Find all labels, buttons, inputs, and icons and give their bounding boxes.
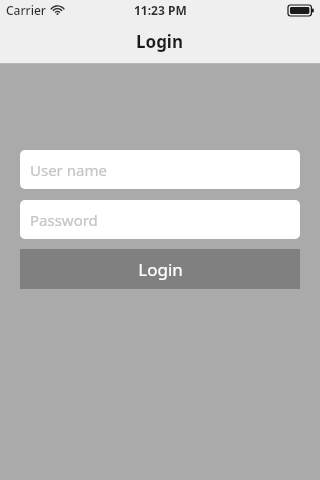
staticText: Password	[30, 210, 98, 230]
button[interactable]: Password	[20, 200, 300, 239]
staticText: 11:23 PM	[134, 2, 187, 18]
staticText: Login	[136, 30, 184, 53]
button[interactable]: User name	[20, 150, 300, 189]
staticText: Login	[138, 258, 183, 281]
staticText: User name	[30, 160, 107, 180]
button[interactable]: Login	[20, 249, 300, 289]
staticText: Carrier	[6, 2, 46, 18]
